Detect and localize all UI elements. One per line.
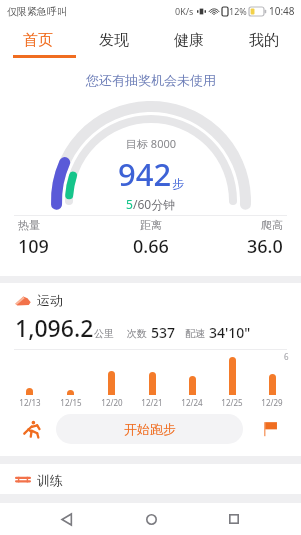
staticText: 步 <box>172 176 184 191</box>
staticText: 12/25 <box>221 397 243 408</box>
button[interactable]: 运动 <box>0 283 301 456</box>
staticText: 12/29 <box>261 397 283 408</box>
button[interactable]: 我的 <box>226 22 301 58</box>
button[interactable]: 您还有抽奖机会未使用 <box>86 72 216 88</box>
button[interactable]: Back <box>50 503 84 535</box>
staticText: 34'10" <box>209 323 251 342</box>
button[interactable]: Home <box>134 503 168 535</box>
button[interactable]: 12/13 <box>9 357 50 408</box>
staticText: 目标 8000 <box>126 136 177 151</box>
button[interactable]: 训练 <box>0 464 301 494</box>
button[interactable]: 首页 <box>0 22 76 58</box>
staticText: 10:48 <box>269 4 295 18</box>
staticText: 12/20 <box>101 397 123 408</box>
staticText: 次数 <box>127 327 147 340</box>
staticText: 我的 <box>249 31 279 50</box>
staticText: 1,096.2 <box>15 312 94 343</box>
staticText: 健康 <box>174 31 204 50</box>
button[interactable]: 发现 <box>76 22 151 58</box>
button[interactable]: Recents <box>217 503 251 535</box>
button[interactable]: 距离 <box>101 218 201 259</box>
staticText: 36.0 <box>247 234 283 259</box>
staticText: 12/24 <box>181 397 203 408</box>
staticText: 0.66 <box>133 234 169 259</box>
button[interactable]: Running <box>16 414 46 444</box>
staticText: 12/15 <box>60 397 82 408</box>
staticText: 运动 <box>37 292 63 308</box>
staticText: 6 <box>284 351 289 362</box>
staticText: 爬高 <box>261 218 283 232</box>
staticText: 109 <box>18 234 49 259</box>
staticText: 5 <box>126 196 133 212</box>
staticText: 热量 <box>18 218 40 232</box>
staticText: 942 <box>118 153 172 195</box>
button[interactable]: 热量 <box>18 218 101 259</box>
staticText: 仅限紧急呼叫 <box>7 5 67 18</box>
button[interactable]: 健康 <box>151 22 226 58</box>
button[interactable]: 开始跑步 <box>56 414 243 444</box>
staticText: 12/13 <box>19 397 41 408</box>
staticText: 0K/s <box>175 5 194 17</box>
staticText: 公里 <box>94 327 114 340</box>
staticText: 发现 <box>99 31 129 50</box>
staticText: 距离 <box>140 218 162 232</box>
button[interactable]: Goal flag <box>255 414 285 444</box>
button[interactable]: 12/29 <box>252 357 292 408</box>
button[interactable]: 12/20 <box>91 357 132 408</box>
button[interactable]: 爬高 <box>201 218 283 259</box>
staticText: 开始跑步 <box>124 421 176 437</box>
button[interactable]: 12/21 <box>132 357 172 408</box>
staticText: 首页 <box>23 31 53 50</box>
staticText: /60分钟 <box>133 196 176 212</box>
staticText: 12/21 <box>141 397 163 408</box>
staticText: 12% <box>229 5 247 17</box>
staticText: 配速 <box>185 327 205 340</box>
staticText: 537 <box>151 323 176 342</box>
button[interactable]: 12/25 <box>212 357 252 408</box>
staticText: 训练 <box>37 472 63 488</box>
button[interactable]: 12/15 <box>50 357 91 408</box>
button[interactable]: 12/24 <box>172 357 212 408</box>
